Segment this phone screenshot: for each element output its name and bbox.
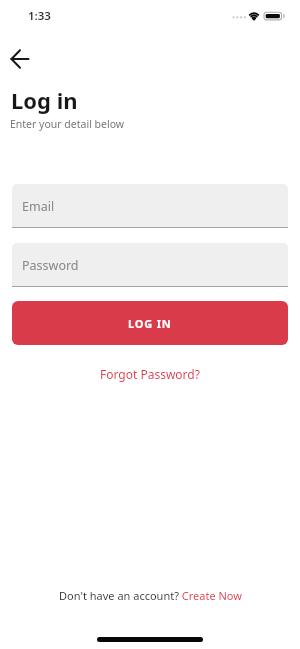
staticText: Password	[22, 257, 79, 274]
button[interactable]	[4, 43, 36, 75]
staticText: 1:33	[28, 8, 51, 24]
button[interactable]: Email	[12, 184, 288, 228]
staticText: LOG IN	[128, 316, 172, 331]
button[interactable]: Don't have an account? Create Now	[57, 586, 244, 605]
button[interactable]: Forgot Password?	[96, 364, 204, 384]
button[interactable]: LOG IN	[12, 301, 288, 345]
staticText: Log in	[11, 85, 78, 115]
staticText: Email	[22, 198, 55, 215]
staticText: Don't have an account? Create Now	[59, 588, 242, 603]
staticText: Enter your detail below	[10, 117, 125, 131]
button[interactable]: Password	[12, 243, 288, 287]
staticText: Forgot Password?	[100, 366, 200, 382]
